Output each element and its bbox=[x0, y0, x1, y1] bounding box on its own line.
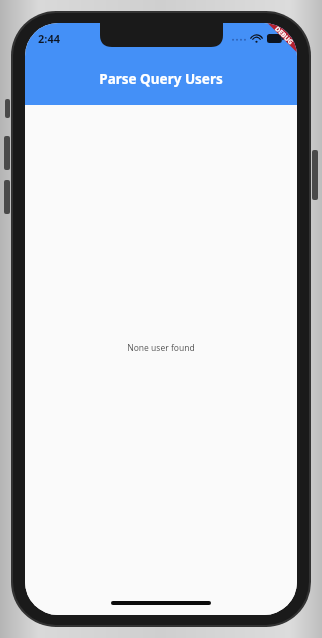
button[interactable]: Parse Query Users bbox=[25, 53, 297, 105]
staticText: Parse Query Users bbox=[99, 70, 223, 88]
staticText: None user found bbox=[127, 342, 195, 354]
other: Debug banner bbox=[253, 23, 297, 67]
staticText: 2:44 bbox=[38, 31, 60, 46]
staticText: DEBUG bbox=[273, 24, 296, 47]
